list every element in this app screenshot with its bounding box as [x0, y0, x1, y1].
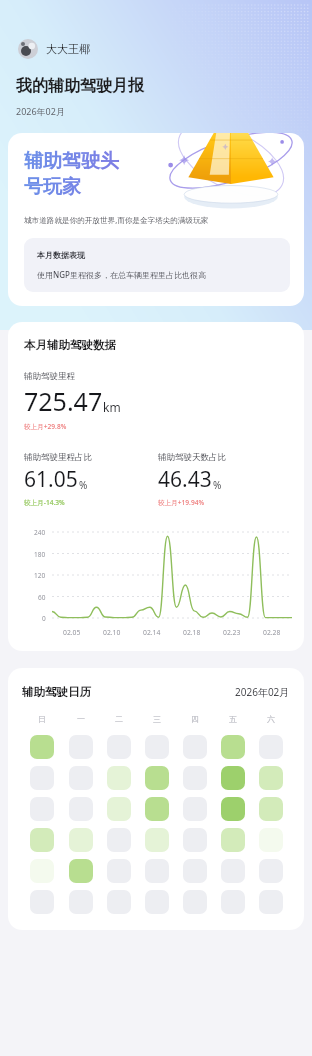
- button[interactable]: [259, 735, 283, 759]
- button[interactable]: [107, 859, 131, 883]
- staticText: 五: [229, 714, 237, 724]
- button[interactable]: [30, 766, 54, 790]
- staticText: 号玩家: [24, 175, 81, 199]
- button[interactable]: 辅助驾驶日历: [8, 668, 304, 930]
- button[interactable]: [259, 890, 283, 914]
- staticText: 02.28: [263, 628, 281, 637]
- staticText: 02.05: [63, 628, 81, 637]
- staticText: 61.05: [24, 465, 78, 494]
- button[interactable]: 本月辅助驾驶数据: [8, 322, 304, 651]
- button[interactable]: [183, 859, 207, 883]
- staticText: 大大王椰: [46, 42, 90, 56]
- button[interactable]: 辅助驾驶里程占比: [24, 452, 158, 507]
- staticText: 四: [191, 714, 199, 724]
- button[interactable]: [145, 735, 169, 759]
- staticText: 725.47: [24, 384, 103, 418]
- button[interactable]: [183, 735, 207, 759]
- button[interactable]: [221, 828, 245, 852]
- staticText: 2026年02月: [16, 105, 65, 117]
- button[interactable]: [107, 766, 131, 790]
- button[interactable]: [30, 735, 54, 759]
- staticText: 较上月+29.8%: [24, 422, 67, 431]
- staticText: 240: [34, 528, 46, 537]
- button[interactable]: [69, 735, 93, 759]
- button[interactable]: [30, 890, 54, 914]
- button[interactable]: [221, 890, 245, 914]
- button[interactable]: [69, 859, 93, 883]
- button[interactable]: [30, 828, 54, 852]
- button[interactable]: [107, 735, 131, 759]
- staticText: 我的辅助驾驶月报: [16, 76, 144, 96]
- staticText: 120: [34, 571, 46, 580]
- staticText: 本月辅助驾驶数据: [24, 338, 116, 352]
- staticText: 二: [115, 714, 123, 724]
- button[interactable]: 大大王椰: [16, 37, 92, 61]
- button[interactable]: [183, 797, 207, 821]
- staticText: 0: [42, 614, 46, 623]
- staticText: 60: [38, 593, 46, 602]
- staticText: %: [79, 478, 88, 492]
- button[interactable]: 本月数据表现: [24, 238, 290, 292]
- button[interactable]: [69, 766, 93, 790]
- button[interactable]: [259, 828, 283, 852]
- button[interactable]: [259, 766, 283, 790]
- staticText: 辅助驾驶日历: [22, 685, 91, 699]
- staticText: 一: [77, 714, 85, 724]
- staticText: 较上月-14.3%: [24, 498, 65, 507]
- button[interactable]: [69, 797, 93, 821]
- button[interactable]: [183, 890, 207, 914]
- button[interactable]: [145, 890, 169, 914]
- staticText: 城市道路就是你的开放世界,而你是金字塔尖的满级玩家: [24, 215, 209, 225]
- staticText: 辅助驾驶里程占比: [24, 452, 92, 463]
- staticText: 日: [38, 714, 46, 724]
- staticText: 使用NGP里程很多，在总车辆里程里占比也很高: [37, 269, 206, 280]
- staticText: 六: [267, 714, 275, 724]
- other: Achievement pyramid: [160, 133, 302, 209]
- button[interactable]: [69, 890, 93, 914]
- button[interactable]: [107, 890, 131, 914]
- button[interactable]: [221, 797, 245, 821]
- staticText: 02.18: [183, 628, 201, 637]
- staticText: 辅助驾驶天数占比: [158, 452, 226, 463]
- button[interactable]: [145, 828, 169, 852]
- button[interactable]: [221, 766, 245, 790]
- staticText: 较上月+19.94%: [158, 498, 205, 507]
- staticText: km: [103, 399, 121, 415]
- button[interactable]: [221, 859, 245, 883]
- staticText: 本月数据表现: [37, 250, 85, 260]
- button[interactable]: [221, 735, 245, 759]
- staticText: 2026年02月: [235, 685, 290, 699]
- button[interactable]: [30, 859, 54, 883]
- button[interactable]: [107, 828, 131, 852]
- button[interactable]: [183, 766, 207, 790]
- button[interactable]: [183, 828, 207, 852]
- staticText: 46.43: [158, 465, 212, 494]
- staticText: 辅助驾驶里程: [24, 371, 75, 382]
- staticText: %: [213, 478, 222, 492]
- staticText: 02.14: [143, 628, 161, 637]
- staticText: 三: [153, 714, 161, 724]
- staticText: 辅助驾驶头: [24, 149, 119, 173]
- button[interactable]: [145, 797, 169, 821]
- button[interactable]: [69, 828, 93, 852]
- button[interactable]: Achievement pyramid: [8, 133, 304, 306]
- button[interactable]: 辅助驾驶天数占比: [158, 452, 292, 507]
- staticText: 02.23: [223, 628, 241, 637]
- button[interactable]: [30, 797, 54, 821]
- staticText: 02.10: [103, 628, 121, 637]
- button[interactable]: [107, 797, 131, 821]
- button[interactable]: [259, 797, 283, 821]
- button[interactable]: [145, 766, 169, 790]
- button[interactable]: [259, 859, 283, 883]
- staticText: 180: [34, 550, 46, 559]
- button[interactable]: [145, 859, 169, 883]
